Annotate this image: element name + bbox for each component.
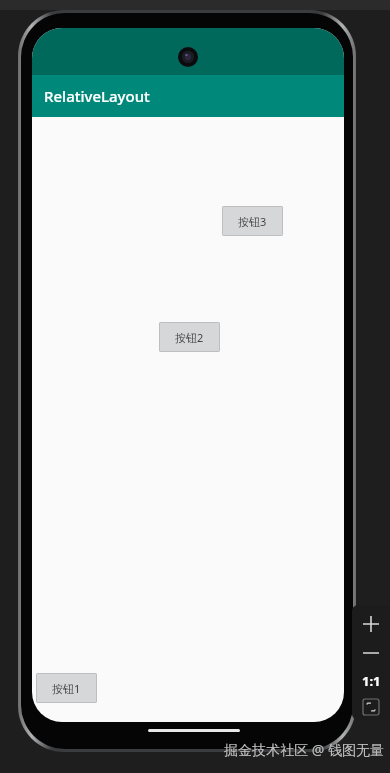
staticText: 1:1 <box>362 672 381 690</box>
button[interactable]: 按钮2 <box>159 322 220 352</box>
staticText: 按钮3 <box>238 214 267 229</box>
button[interactable]: Zoom in <box>352 609 390 639</box>
staticText: 掘金技术社区 @ 钱图无量 <box>224 740 384 759</box>
staticText: RelativeLayout <box>44 86 150 106</box>
button[interactable]: Fit to screen <box>352 694 390 720</box>
button[interactable]: Zoom out <box>352 639 390 667</box>
button[interactable]: 按钮1 <box>36 673 97 703</box>
button[interactable]: 按钮3 <box>222 206 283 236</box>
button[interactable]: 1:1 <box>352 667 390 695</box>
staticText: 按钮2 <box>175 330 204 345</box>
staticText: 按钮1 <box>52 681 81 696</box>
